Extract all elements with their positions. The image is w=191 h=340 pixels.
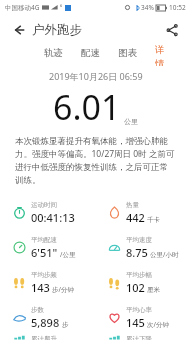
button[interactable]: 平均速度 xyxy=(95,230,191,265)
staticText: 2019年10月26日 06:59 xyxy=(49,70,143,82)
button[interactable]: 配速 xyxy=(79,47,102,63)
staticText: 轨迹 xyxy=(44,47,63,59)
staticText: 配速 xyxy=(81,47,100,59)
button[interactable]: 累计下降 xyxy=(95,335,191,340)
button[interactable]: 平均心率 xyxy=(95,300,191,335)
button[interactable]: 平均步频 xyxy=(0,265,95,300)
staticText: 中国移动4G xyxy=(5,3,40,12)
staticText: 145 xyxy=(126,315,145,330)
staticText: 公里 xyxy=(124,117,138,126)
staticText: 步数 xyxy=(31,306,44,314)
staticText: 图表 xyxy=(118,47,137,59)
staticText: 34% xyxy=(141,3,154,12)
button[interactable]: 累计爬升 xyxy=(0,335,95,340)
staticText: 厘米 xyxy=(147,286,160,294)
staticText: 平均心率 xyxy=(126,306,152,314)
staticText: 户外跑步 xyxy=(32,22,82,38)
staticText: 公里/小时 xyxy=(150,250,179,259)
button[interactable]: 图表 xyxy=(116,47,139,63)
button[interactable]: 热量 xyxy=(95,195,191,230)
staticText: 千卡 xyxy=(147,216,160,224)
staticText: 00:41:13 xyxy=(31,210,75,225)
staticText: 运动时间 xyxy=(31,201,57,209)
button[interactable]: 步数 xyxy=(0,300,95,335)
staticText: 442 xyxy=(126,210,145,225)
staticText: ⁶ xyxy=(60,4,63,12)
button[interactable]: 平均配速 xyxy=(0,230,95,265)
button[interactable]: Share xyxy=(161,19,183,41)
staticText: 详情 xyxy=(155,44,173,66)
staticText: 平均步幅 xyxy=(126,271,152,279)
staticText: 平均配速 xyxy=(31,236,57,244)
staticText: 8.75 xyxy=(126,245,148,260)
staticText: 6'51" xyxy=(31,245,58,260)
staticText: 平均速度 xyxy=(126,236,152,244)
staticText: 步/分钟 xyxy=(52,285,74,294)
staticText: 10:52 xyxy=(169,3,186,12)
staticText: 102 xyxy=(126,280,145,295)
staticText: 6.01 xyxy=(53,84,121,130)
staticText: 平均步频 xyxy=(31,271,57,279)
staticText: 143 xyxy=(31,280,50,295)
staticText: 步 xyxy=(62,321,69,329)
staticText: 次/分钟 xyxy=(147,320,169,329)
button[interactable]: 平均步幅 xyxy=(95,265,191,300)
staticText: 累计下降 xyxy=(126,335,152,340)
staticText: 热量 xyxy=(126,201,139,209)
staticText: 本次锻炼显著提升有氧体能，增强心肺能力。强度中等偏高。10/27周日 0时 之前… xyxy=(15,136,176,185)
staticText: /公里 xyxy=(60,250,76,259)
button[interactable]: 轨迹 xyxy=(42,47,65,63)
button[interactable]: 详情 xyxy=(153,44,175,66)
button[interactable]: 运动时间 xyxy=(0,195,95,230)
staticText: 5,898 xyxy=(31,315,60,330)
button[interactable]: Back xyxy=(8,19,30,41)
staticText: 累计爬升 xyxy=(31,335,57,340)
